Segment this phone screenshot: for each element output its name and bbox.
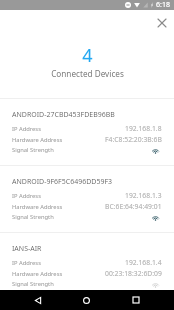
staticText: F4:C8:52:20:3B:6B bbox=[105, 135, 162, 144]
button[interactable]: ANDROID-9F6F5C6496DD59F3 bbox=[0, 165, 174, 232]
staticText: Hardware Address bbox=[12, 203, 63, 211]
staticText: 4 bbox=[82, 43, 93, 68]
staticText: Signal Strength bbox=[12, 280, 54, 288]
staticText: ANDROID-9F6F5C6496DD59F3 bbox=[12, 177, 113, 187]
staticText: ANDROID-27CBD453FDEB96BB bbox=[12, 110, 115, 120]
button[interactable]: ANDROID-B1F2C3D4E5A6B7C8 bbox=[0, 299, 174, 310]
staticText: IP Address bbox=[12, 192, 41, 200]
staticText: IANS-AIR bbox=[12, 244, 42, 254]
button[interactable]: ANDROID-27CBD453FDEB96BB bbox=[0, 98, 174, 165]
staticText: BC:6E:64:94:49:01 bbox=[105, 202, 162, 211]
button[interactable]: Recents bbox=[120, 290, 152, 310]
staticText: IP Address bbox=[12, 259, 41, 267]
staticText: Connected Devices bbox=[51, 68, 124, 79]
button[interactable]: IANS-AIR bbox=[0, 232, 174, 299]
staticText: Signal Strength bbox=[12, 146, 54, 154]
staticText: 192.168.1.3 bbox=[125, 191, 162, 200]
button[interactable]: Back bbox=[22, 290, 54, 310]
button[interactable]: Home bbox=[70, 290, 102, 310]
staticText: Hardware Address bbox=[12, 136, 63, 144]
staticText: 192.168.1.8 bbox=[125, 124, 162, 133]
staticText: IP Address bbox=[12, 125, 41, 133]
staticText: Hardware Address bbox=[12, 270, 63, 278]
staticText: 00:23:18:32:6D:09 bbox=[105, 269, 162, 278]
staticText: 192.168.1.4 bbox=[125, 258, 162, 267]
staticText: Signal Strength bbox=[12, 213, 54, 221]
staticText: 6:18 bbox=[156, 0, 170, 10]
button[interactable]: Close bbox=[153, 14, 171, 32]
